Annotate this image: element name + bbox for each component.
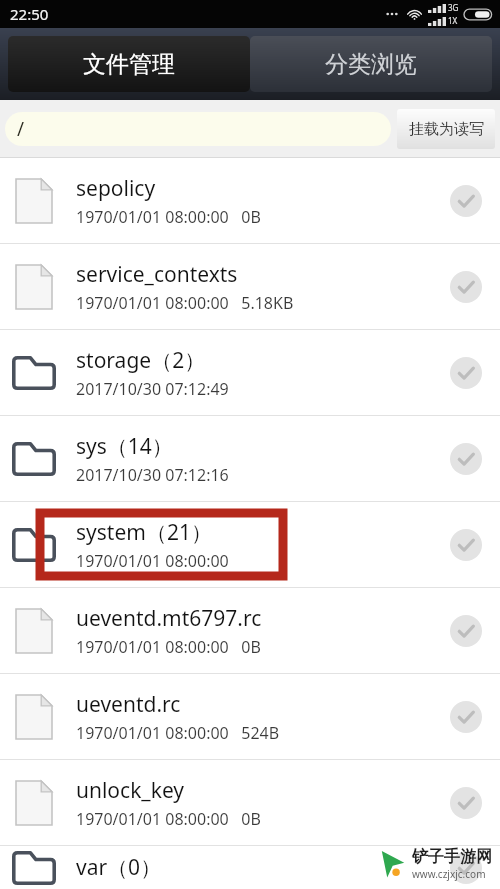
- staticText: 1970/01/01 08:00:00 5.18KB: [76, 292, 294, 314]
- staticText: 铲子手游网: [412, 847, 492, 867]
- staticText: 3G: [448, 2, 459, 13]
- button[interactable]: 文件管理: [8, 36, 250, 92]
- staticText: 1970/01/01 08:00:00 524B: [76, 722, 280, 744]
- staticText: unlock_key: [76, 776, 185, 805]
- staticText: 2017/10/30 07:12:49: [76, 378, 229, 400]
- button[interactable]: Select sepolicy: [440, 175, 492, 227]
- staticText: sepolicy: [76, 174, 156, 203]
- staticText: 分类浏览: [325, 50, 417, 79]
- staticText: 挂载为读写: [409, 120, 484, 139]
- staticText: var（0）: [76, 853, 162, 882]
- staticText: 文件管理: [83, 50, 175, 79]
- button[interactable]: system（21）: [0, 502, 500, 587]
- button[interactable]: var（0）: [0, 846, 500, 889]
- staticText: 1X: [448, 15, 458, 26]
- staticText: 1970/01/01 08:00:00 0B: [76, 636, 261, 658]
- staticText: 22:50: [10, 4, 49, 24]
- staticText: ueventd.mt6797.rc: [76, 604, 262, 633]
- button[interactable]: Select ueventd.mt6797.rc: [440, 605, 492, 657]
- staticText: service_contexts: [76, 260, 238, 289]
- staticText: storage（2）: [76, 346, 206, 375]
- button[interactable]: /: [5, 112, 391, 146]
- staticText: sys（14）: [76, 432, 173, 461]
- staticText: www.czjxjc.com: [412, 867, 486, 881]
- button[interactable]: Select service_contexts: [440, 261, 492, 313]
- button[interactable]: 分类浏览: [250, 36, 492, 92]
- button[interactable]: ueventd.mt6797.rc: [0, 588, 500, 673]
- button[interactable]: Select system（21）: [440, 519, 492, 571]
- button[interactable]: Select sys（14）: [440, 433, 492, 485]
- button[interactable]: Select ueventd.rc: [440, 691, 492, 743]
- button[interactable]: storage（2）: [0, 330, 500, 415]
- button[interactable]: Select unlock_key: [440, 777, 492, 829]
- button[interactable]: ueventd.rc: [0, 674, 500, 759]
- staticText: /: [17, 116, 25, 142]
- button[interactable]: sepolicy: [0, 158, 500, 243]
- button[interactable]: sys（14）: [0, 416, 500, 501]
- button[interactable]: unlock_key: [0, 760, 500, 845]
- button[interactable]: Select storage（2）: [440, 347, 492, 399]
- button[interactable]: 挂载为读写: [397, 109, 495, 149]
- staticText: system（21）: [76, 518, 212, 547]
- staticText: 1970/01/01 08:00:00: [76, 550, 229, 572]
- staticText: 2017/10/30 07:12:16: [76, 464, 229, 486]
- staticText: 1970/01/01 08:00:00 0B: [76, 808, 261, 830]
- staticText: ueventd.rc: [76, 690, 181, 719]
- button[interactable]: Select var（0）: [440, 846, 492, 889]
- button[interactable]: service_contexts: [0, 244, 500, 329]
- staticText: 1970/01/01 08:00:00 0B: [76, 206, 261, 228]
